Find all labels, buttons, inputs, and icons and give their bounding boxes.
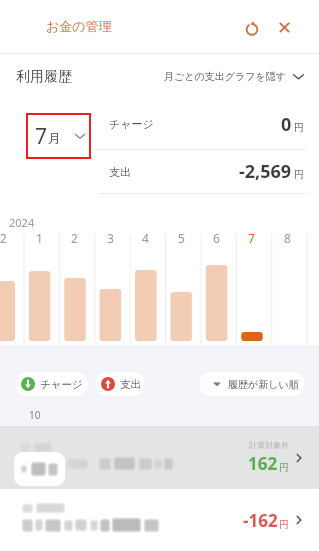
staticText: 7 [35, 122, 48, 151]
staticText: 円 [279, 461, 289, 474]
staticText: 2024 [9, 215, 35, 230]
staticText: 5 [178, 230, 185, 246]
staticText: チャージ [109, 117, 154, 131]
staticText: チャージ [40, 378, 83, 391]
staticText: 月ごとの支出グラフを隠す [164, 70, 286, 83]
staticText: 3 [107, 230, 114, 246]
staticText: 7 [248, 230, 255, 246]
button[interactable]: Close [267, 10, 302, 45]
staticText: 支出 [120, 378, 141, 391]
staticText: 円 [294, 121, 304, 134]
staticText: 162 [248, 452, 278, 475]
staticText: 4 [142, 230, 149, 246]
staticText: お金の管理 [46, 18, 112, 34]
staticText: 利用履歴 [16, 68, 72, 86]
staticText: 履歴が新しい順 [228, 378, 299, 391]
staticText: -162 [243, 509, 278, 532]
staticText: 支出 [109, 165, 131, 179]
staticText: 円 [279, 518, 289, 531]
staticText: -2,569 [239, 159, 292, 184]
button[interactable]: Refresh [234, 10, 269, 45]
button[interactable]: -162 [0, 489, 319, 551]
button[interactable]: 計算対象外 [0, 426, 319, 489]
staticText: 2 [0, 230, 7, 246]
staticText: 8 [284, 230, 291, 246]
staticText: 2 [71, 230, 78, 246]
staticText: 円 [294, 168, 304, 181]
button[interactable]: チャージ [15, 372, 88, 396]
button[interactable]: 月ごとの支出グラフを隠す [158, 62, 319, 91]
staticText: 計算対象外 [249, 440, 289, 450]
staticText: 1 [36, 230, 43, 246]
button[interactable]: 支出 [95, 372, 145, 396]
button[interactable]: 履歴が新しい順 [199, 372, 305, 396]
staticText: 0 [281, 112, 292, 137]
button[interactable]: 7 [26, 113, 91, 159]
staticText: 月 [48, 130, 61, 146]
staticText: 10 [29, 408, 41, 422]
staticText: 6 [213, 230, 220, 246]
